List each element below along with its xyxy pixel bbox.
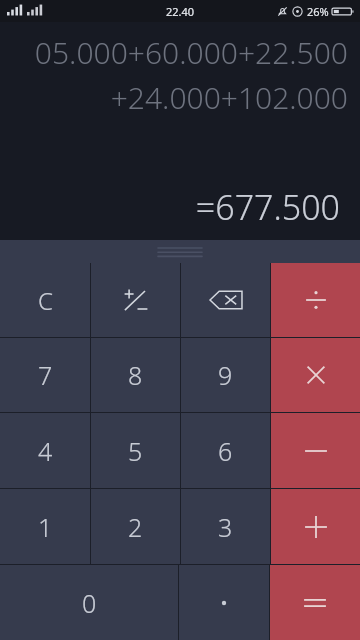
other: Plus — [303, 514, 329, 540]
staticText: 3 — [218, 510, 233, 544]
button[interactable]: 0 — [0, 565, 178, 640]
button[interactable]: 7 — [0, 338, 90, 412]
button[interactable]: 4 — [0, 413, 90, 488]
staticText: 4 — [38, 434, 53, 468]
staticText: C — [38, 284, 53, 317]
button[interactable]: 3 — [181, 489, 270, 564]
staticText: 22.40 — [166, 4, 195, 19]
staticText: 1 — [38, 510, 53, 544]
button[interactable]: 2 — [91, 489, 180, 564]
button[interactable]: Multiply — [271, 338, 360, 412]
other: Multiply — [304, 363, 328, 387]
staticText: 2 — [128, 510, 143, 544]
button[interactable]: Equals — [270, 565, 360, 640]
other: Divide — [303, 287, 329, 313]
button[interactable]: Plus — [271, 489, 360, 564]
staticText: 6 — [218, 434, 233, 468]
other: Minus — [303, 446, 329, 456]
staticText: 0 — [82, 586, 97, 620]
button[interactable]: 6 — [181, 413, 270, 488]
staticText: =677.500 — [195, 184, 340, 230]
other: Equals — [302, 596, 328, 610]
button[interactable]: Minus — [271, 413, 360, 488]
staticText: 8 — [128, 358, 143, 392]
other: Plus minus sign — [121, 285, 151, 315]
staticText: 7 — [38, 358, 53, 392]
button[interactable]: C — [0, 263, 90, 337]
staticText: 26% — [307, 4, 329, 19]
button[interactable]: Backspace — [181, 263, 270, 337]
button[interactable]: Decimal point — [179, 565, 269, 640]
button[interactable]: 5 — [91, 413, 180, 488]
other: Decimal point — [214, 593, 234, 613]
button[interactable]: Divide — [271, 263, 360, 337]
button[interactable]: 9 — [181, 338, 270, 412]
button[interactable]: 8 — [91, 338, 180, 412]
staticText: 05.000+60.000+22.500+24.000+102.000 — [18, 32, 348, 117]
other: Backspace — [209, 289, 243, 311]
staticText: 9 — [218, 358, 233, 392]
staticText: 5 — [128, 434, 143, 468]
button[interactable]: 1 — [0, 489, 90, 564]
button[interactable]: Plus minus sign — [91, 263, 180, 337]
